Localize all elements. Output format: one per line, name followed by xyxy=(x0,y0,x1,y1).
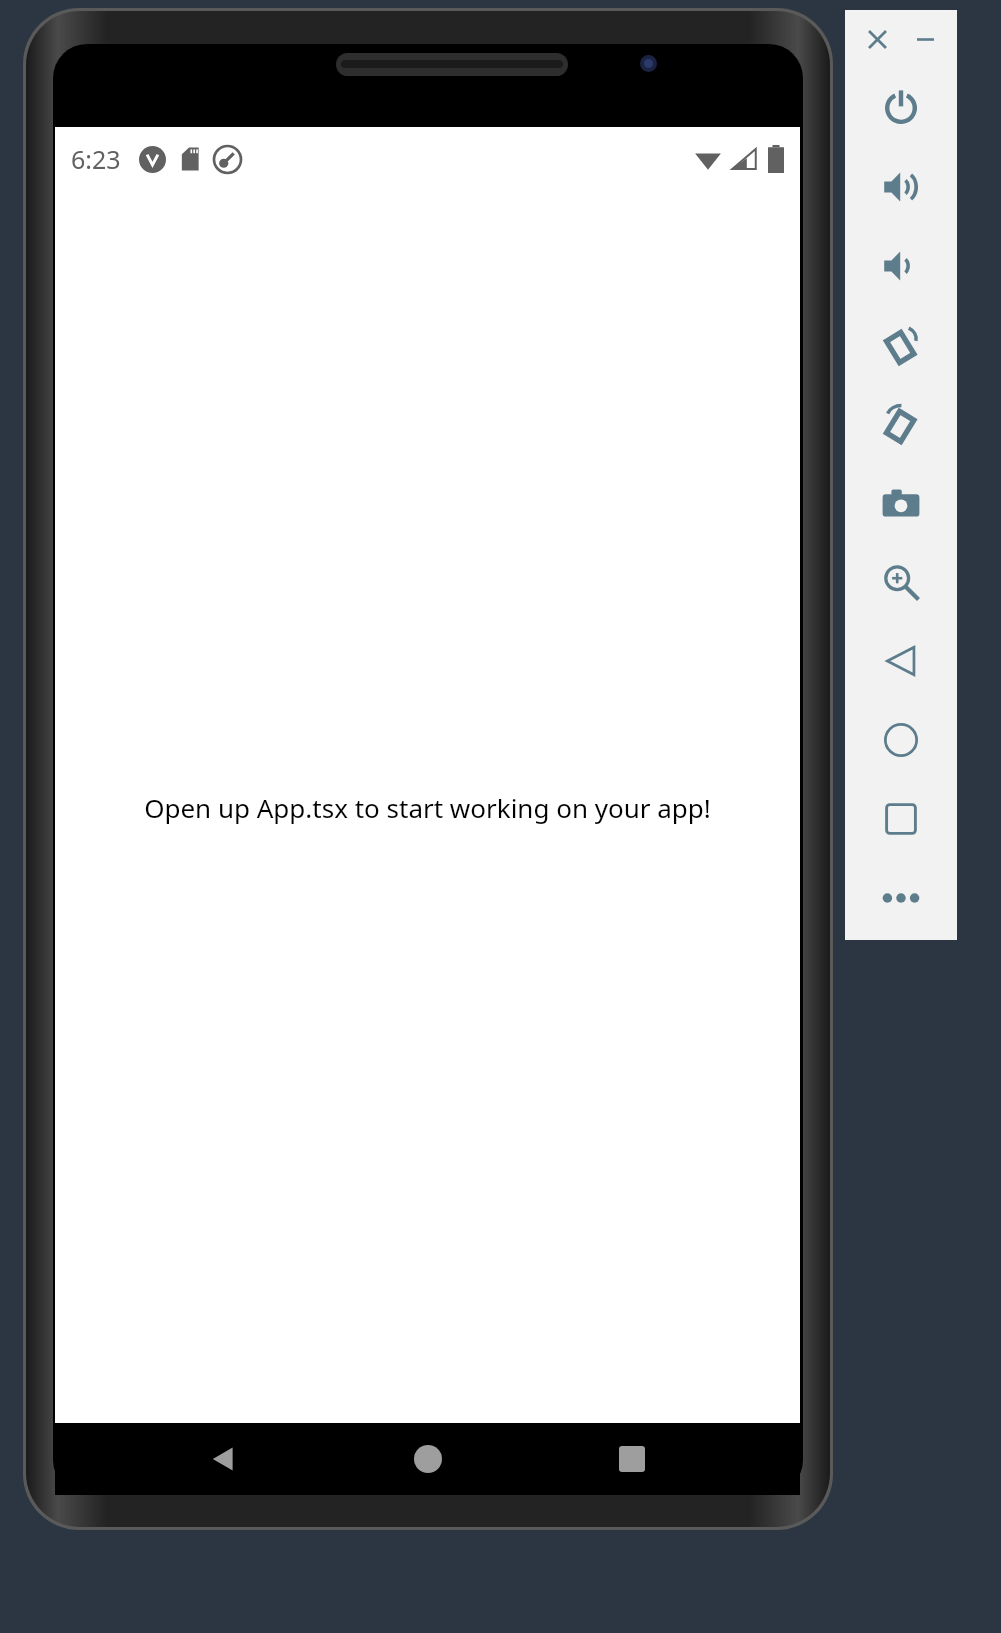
button[interactable]: Recent apps xyxy=(596,1423,668,1495)
button[interactable]: Volume up xyxy=(845,147,957,226)
button[interactable]: Minimize xyxy=(908,22,942,56)
button[interactable]: Back xyxy=(187,1423,259,1495)
button[interactable]: Rotate right xyxy=(845,384,957,463)
button[interactable]: Close xyxy=(860,22,894,56)
button[interactable]: Home xyxy=(845,700,957,779)
button[interactable]: Overview xyxy=(845,779,957,858)
staticText: 6:23 xyxy=(71,142,121,176)
button[interactable]: Rotate left xyxy=(845,305,957,384)
staticText: Open up App.tsx to start working on your… xyxy=(144,790,711,825)
button[interactable]: Volume down xyxy=(845,226,957,305)
button[interactable]: Home xyxy=(392,1423,464,1495)
button[interactable]: Back xyxy=(845,621,957,700)
button[interactable]: Take screenshot xyxy=(845,463,957,542)
button[interactable]: Power xyxy=(845,68,957,147)
button[interactable]: Zoom xyxy=(845,542,957,621)
button[interactable]: More xyxy=(845,858,957,937)
